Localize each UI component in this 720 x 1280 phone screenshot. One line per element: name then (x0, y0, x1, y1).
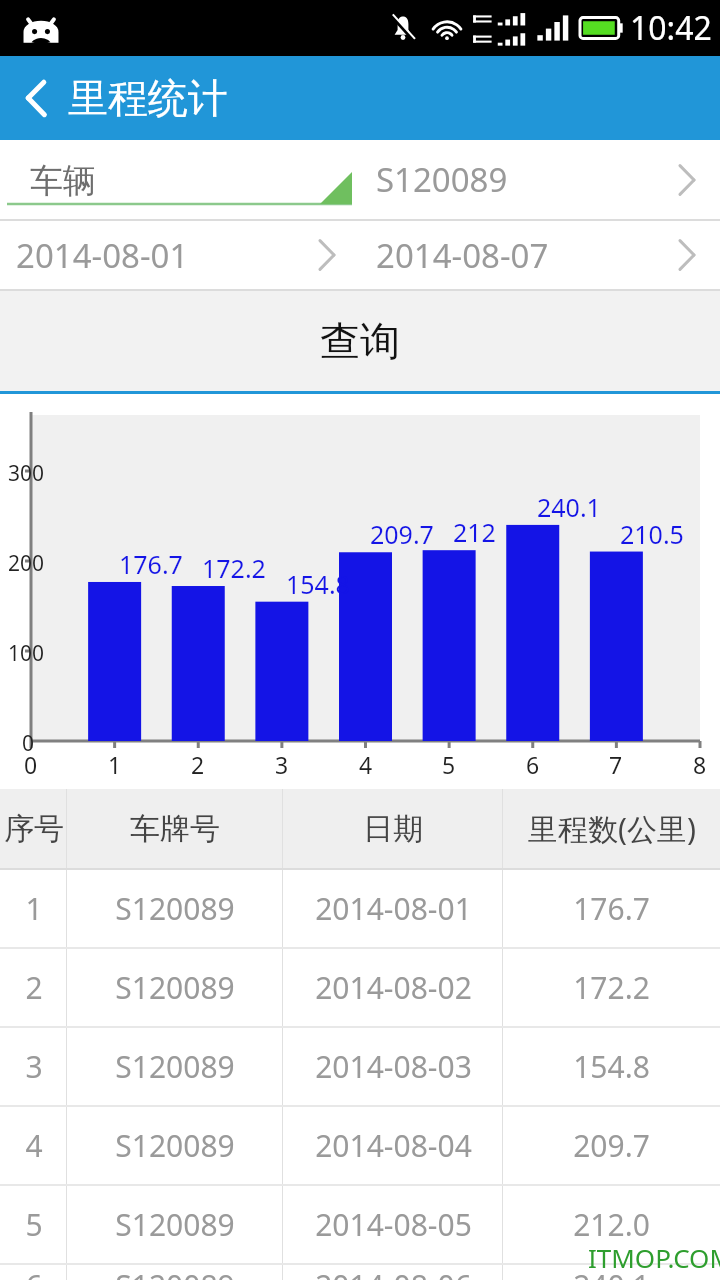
staticText: 2014-08-04 (315, 1125, 472, 1166)
staticText: 240.1 (573, 1265, 650, 1280)
staticText: 210.5 (620, 517, 699, 551)
button[interactable]: S120089 (360, 140, 720, 219)
button[interactable]: 2 (0, 949, 720, 1026)
button[interactable]: 4 (0, 1107, 720, 1184)
button[interactable]: 1 (0, 870, 720, 947)
staticText: 里程统计 (68, 73, 228, 123)
button[interactable]: Back (14, 67, 236, 129)
staticText: 10:42 (630, 6, 712, 50)
staticText: 300 (8, 459, 45, 488)
staticText: ITMOP.COM (588, 1240, 720, 1275)
staticText: 2 (191, 749, 205, 780)
staticText: 里程数(公里) (528, 808, 696, 849)
button[interactable]: 2014-08-01 (0, 221, 360, 289)
staticText: S120089 (115, 1046, 235, 1087)
staticText: 0 (24, 749, 38, 780)
button[interactable]: 车辆 (0, 140, 360, 219)
staticText: 172.2 (573, 967, 650, 1008)
staticText: 车牌号 (130, 810, 220, 848)
button[interactable]: 5 (0, 1186, 720, 1263)
staticText: 5 (25, 1204, 43, 1245)
staticText: 5 (442, 749, 456, 780)
staticText: 2 (25, 967, 43, 1008)
staticText: 176.7 (573, 888, 650, 929)
staticText: 200 (8, 549, 45, 578)
staticText: 2014-08-02 (315, 967, 472, 1008)
staticText: 100 (8, 639, 45, 668)
staticText: 序号 (4, 810, 64, 848)
staticText: 2014-08-06 (315, 1265, 472, 1280)
staticText: 2014-08-05 (315, 1204, 472, 1245)
staticText: 查询 (320, 316, 400, 366)
staticText: S120089 (115, 967, 235, 1008)
staticText: 209.7 (573, 1125, 650, 1166)
staticText: 2014-08-07 (376, 233, 549, 278)
button[interactable]: 序号 (0, 789, 720, 868)
staticText: 176.7 (119, 547, 198, 581)
staticText: S120089 (115, 888, 235, 929)
staticText: 3 (25, 1046, 43, 1087)
staticText: 4 (359, 749, 373, 780)
button[interactable]: 3 (0, 1028, 720, 1105)
other: Back (22, 76, 50, 120)
staticText: 7 (609, 749, 623, 780)
staticText: 6 (526, 749, 540, 780)
staticText: S120089 (115, 1125, 235, 1166)
staticText: 1 (25, 888, 43, 929)
staticText: 154.8 (573, 1046, 650, 1087)
staticText: 车辆 (30, 160, 96, 202)
staticText: 2014-08-01 (16, 233, 189, 278)
staticText: 4 (25, 1125, 43, 1166)
staticText: 154.8 (286, 567, 365, 601)
staticText: 1 (108, 749, 122, 780)
staticText: 2014-08-01 (315, 888, 472, 929)
staticText: 2014-08-03 (315, 1046, 472, 1087)
staticText: 212.0 (573, 1204, 650, 1245)
staticText: S120089 (376, 157, 508, 202)
button[interactable]: 查询 (0, 291, 720, 391)
staticText: S120089 (115, 1204, 235, 1245)
staticText: S120089 (115, 1265, 235, 1280)
staticText: 0 (22, 729, 35, 758)
staticText: 212 (453, 515, 506, 549)
staticText: 240.1 (537, 490, 616, 524)
button[interactable]: 2014-08-07 (360, 221, 720, 289)
staticText: 8 (693, 749, 707, 780)
staticText: 209.7 (370, 517, 449, 551)
staticText: 172.2 (202, 551, 281, 585)
button[interactable]: 6 (0, 1265, 720, 1280)
staticText: 6 (25, 1265, 43, 1280)
staticText: 日期 (363, 810, 423, 848)
staticText: 3 (275, 749, 289, 780)
